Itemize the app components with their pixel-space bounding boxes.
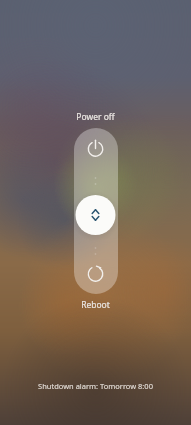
- button[interactable]: Power off or reboot slider: [74, 128, 118, 294]
- button[interactable]: Reboot: [74, 254, 118, 294]
- button[interactable]: Power off: [74, 129, 118, 169]
- staticText: Power off: [76, 111, 115, 123]
- button[interactable]: Slide to power off or reboot: [76, 195, 116, 235]
- staticText: Reboot: [81, 299, 110, 311]
- staticText: Shutdown alarm: Tomorrow 8:00: [38, 381, 153, 391]
